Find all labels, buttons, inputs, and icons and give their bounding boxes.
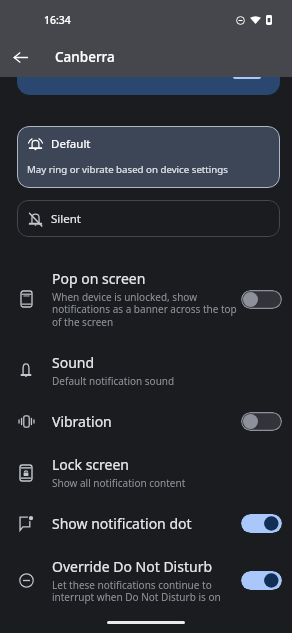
staticText: 16:34	[44, 13, 71, 27]
staticText: Vibration	[52, 412, 112, 431]
button[interactable]: Back	[7, 44, 34, 71]
staticText: Lock screen	[52, 455, 130, 474]
button[interactable]: Silent	[17, 200, 280, 237]
staticText: Silent	[51, 211, 81, 227]
staticText: Canberra	[55, 48, 115, 66]
staticText: May ring or vibrate based on device sett…	[27, 163, 228, 176]
button[interactable]: Vibration	[0, 400, 292, 443]
staticText: Default notification sound	[52, 374, 175, 388]
button[interactable]: Lock screen	[0, 443, 292, 502]
button[interactable]: Toggle off	[241, 412, 282, 431]
button[interactable]: Show notification dot	[0, 502, 292, 545]
staticText: Show notification dot	[52, 514, 192, 533]
button[interactable]: Toggle off	[241, 290, 282, 309]
button[interactable]: Default	[17, 126, 280, 188]
staticText: Let these notifications continue to inte…	[52, 578, 239, 604]
button[interactable]: Toggle on	[241, 571, 282, 590]
staticText: Override Do Not Disturb	[52, 557, 213, 576]
button[interactable]: Sound	[0, 341, 292, 400]
staticText: When device is unlocked, show notificati…	[52, 290, 239, 329]
staticText: Show all notification content	[52, 476, 186, 490]
button[interactable]	[17, 77, 280, 95]
staticText: Pop on screen	[52, 269, 146, 288]
staticText: Default	[51, 136, 91, 152]
staticText: Sound	[52, 353, 95, 372]
button[interactable]: Toggle on	[241, 514, 282, 533]
button[interactable]: Override Do Not Disturb	[0, 545, 292, 616]
button[interactable]: Pop on screen	[0, 257, 292, 341]
